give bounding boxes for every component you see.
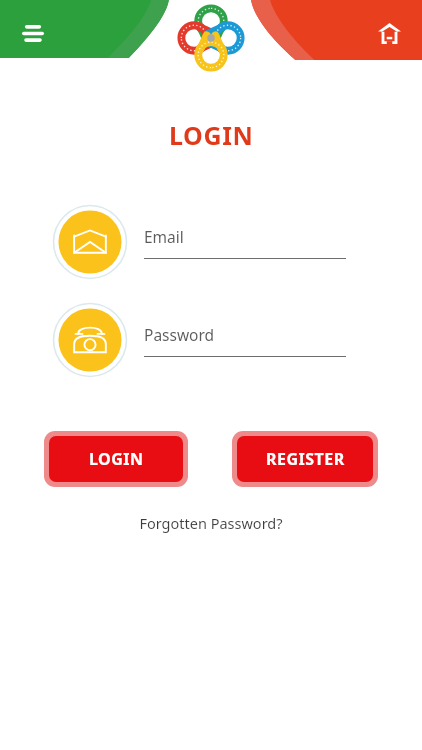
button[interactable]: Menu [12,12,54,54]
staticText: LOGIN [89,448,144,470]
staticText: Email [144,226,184,247]
staticText: REGISTER [266,448,345,470]
button[interactable]: Password [52,302,346,378]
staticText: Forgotten Password? [139,513,283,533]
button[interactable]: Home [368,12,410,54]
button[interactable]: Email [52,204,346,280]
button[interactable]: Forgotten Password? [129,508,293,538]
button[interactable]: REGISTER [232,431,378,487]
button[interactable]: LOGIN [44,431,188,487]
staticText: Password [144,324,215,345]
staticText: LOGIN [169,118,254,152]
